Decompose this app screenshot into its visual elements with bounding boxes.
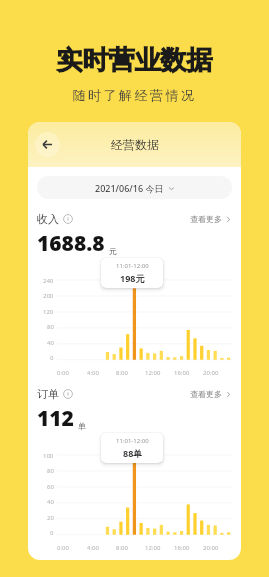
staticText: 0:00 (57, 544, 69, 552)
staticText: 查看更多 (190, 389, 222, 399)
staticText: 100 (43, 452, 54, 460)
staticText: 订单 (37, 387, 59, 401)
button[interactable]: Back (35, 132, 60, 157)
staticText: 11:01-12:00 (116, 437, 149, 445)
staticText: 经营数据 (111, 137, 159, 152)
staticText: 8:00 (116, 544, 128, 552)
staticText: 88单 (123, 447, 143, 459)
staticText: 8:00 (116, 369, 128, 377)
staticText: 16:00 (174, 544, 190, 552)
staticText: 收入 (37, 212, 59, 226)
staticText: 198元 (120, 272, 145, 284)
staticText: 随时了解经营情况 (0, 87, 269, 103)
staticText: 单 (78, 421, 86, 431)
button[interactable]: 查看更多 (190, 389, 232, 399)
staticText: 20 (47, 514, 54, 522)
staticText: 实时营业数据 (0, 44, 269, 77)
staticText: 4:00 (87, 544, 99, 552)
staticText: 60 (47, 483, 54, 491)
staticText: 查看更多 (190, 214, 222, 224)
staticText: 40 (47, 339, 54, 347)
button[interactable]: 11:01-12:00 (101, 258, 163, 288)
staticText: 112 (37, 404, 74, 433)
button[interactable]: 查看更多 (190, 214, 232, 224)
staticText: 200 (43, 292, 54, 300)
staticText: 11:01-12:00 (116, 262, 149, 270)
staticText: 20:00 (203, 544, 219, 552)
staticText: 80 (47, 467, 54, 475)
staticText: 0 (50, 529, 54, 537)
button[interactable]: Info (63, 214, 73, 224)
staticText: 0:00 (57, 369, 69, 377)
button[interactable]: Info (63, 389, 73, 399)
staticText: 2021/06/16 今日 (95, 182, 164, 194)
staticText: 40 (47, 498, 54, 506)
staticText: 0 (50, 354, 54, 362)
staticText: 80 (47, 323, 54, 331)
staticText: 12:00 (145, 544, 161, 552)
staticText: 4:00 (87, 369, 99, 377)
staticText: 20:00 (203, 369, 219, 377)
staticText: 120 (43, 308, 54, 316)
staticText: 元 (109, 246, 117, 256)
button[interactable]: 11:01-12:00 (101, 433, 163, 463)
staticText: 240 (43, 277, 54, 285)
staticText: 16:00 (174, 369, 190, 377)
button[interactable]: 2021/06/16 今日 (37, 176, 232, 199)
staticText: 1688.8 (37, 229, 105, 258)
staticText: 12:00 (145, 369, 161, 377)
